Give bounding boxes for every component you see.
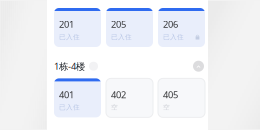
staticText: 405 <box>163 88 178 101</box>
staticText: 已入住 <box>163 33 184 41</box>
staticText: 201 <box>59 18 74 30</box>
button[interactable]: Collapse floor <box>193 61 204 72</box>
staticText: 已入住 <box>111 33 132 41</box>
button[interactable]: 405 <box>158 78 205 117</box>
button[interactable]: 402 <box>106 78 153 117</box>
staticText: 1栋-4楼 <box>54 60 85 72</box>
button[interactable]: 205 <box>106 8 153 47</box>
button[interactable]: 201 <box>54 8 101 47</box>
staticText: 已入住 <box>59 103 80 111</box>
staticText: 空 <box>111 103 118 111</box>
staticText: 402 <box>111 88 126 101</box>
staticText: 206 <box>163 18 178 30</box>
button[interactable]: 401 <box>54 78 101 117</box>
button[interactable]: 206 <box>158 8 205 47</box>
staticText: 205 <box>111 18 126 30</box>
staticText: 空 <box>163 103 170 111</box>
staticText: 已入住 <box>59 33 80 41</box>
staticText: 401 <box>59 88 74 101</box>
